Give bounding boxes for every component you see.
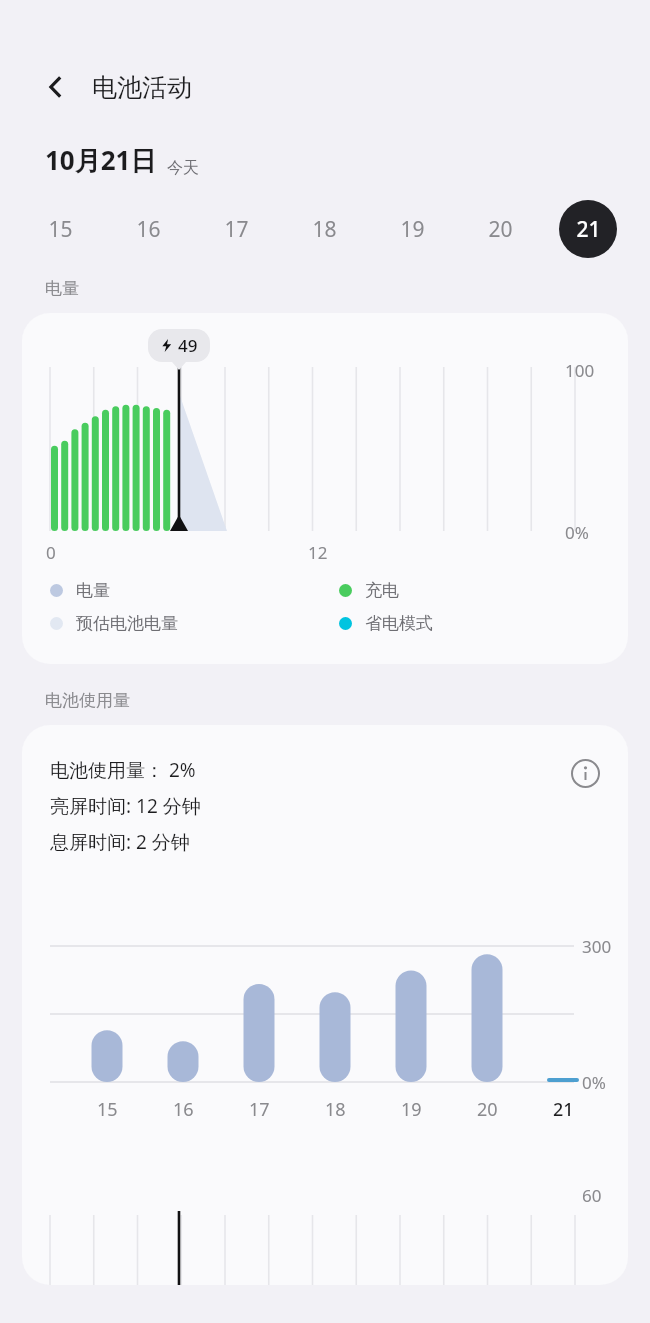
button[interactable]: Info: [564, 752, 606, 794]
button[interactable]: 18: [295, 200, 353, 258]
staticText: 16: [173, 1097, 194, 1122]
staticText: 0%: [565, 521, 589, 544]
staticText: 亮屏时间: 12 分钟: [50, 793, 201, 819]
staticText: 12: [308, 541, 328, 564]
staticText: 充电: [365, 580, 399, 601]
staticText: 21: [576, 215, 601, 244]
staticText: 15: [97, 1097, 118, 1122]
staticText: 电池活动: [92, 72, 192, 103]
staticText: 20: [477, 1097, 498, 1122]
staticText: 息屏时间: 2 分钟: [50, 829, 190, 855]
staticText: 18: [325, 1097, 346, 1122]
staticText: 17: [224, 215, 249, 244]
button[interactable]: 21: [559, 200, 617, 258]
staticText: 16: [136, 215, 161, 244]
button[interactable]: 16: [119, 200, 177, 258]
staticText: 19: [400, 215, 425, 244]
staticText: 100: [565, 359, 595, 382]
staticText: 0%: [582, 1071, 606, 1094]
staticText: 18: [312, 215, 337, 244]
staticText: 省电模式: [365, 613, 433, 634]
staticText: 10月21日: [45, 142, 157, 178]
staticText: 15: [48, 215, 73, 244]
staticText: 电量: [76, 580, 110, 601]
staticText: 0: [46, 541, 56, 564]
staticText: 49: [178, 334, 198, 357]
staticText: 21: [553, 1097, 574, 1122]
staticText: 电量: [45, 278, 79, 299]
staticText: 300: [582, 935, 612, 958]
staticText: 预估电池电量: [76, 613, 178, 634]
staticText: 60: [582, 1184, 602, 1207]
button[interactable]: 15: [31, 200, 89, 258]
staticText: 电池使用量: [45, 690, 130, 711]
button[interactable]: Back: [34, 65, 78, 109]
staticText: 19: [401, 1097, 422, 1122]
staticText: 电池使用量： 2%: [50, 757, 196, 783]
button[interactable]: 19: [383, 200, 441, 258]
staticText: 20: [488, 215, 513, 244]
button[interactable]: 20: [471, 200, 529, 258]
staticText: 今天: [167, 158, 199, 178]
staticText: 17: [249, 1097, 270, 1122]
button[interactable]: 17: [207, 200, 265, 258]
